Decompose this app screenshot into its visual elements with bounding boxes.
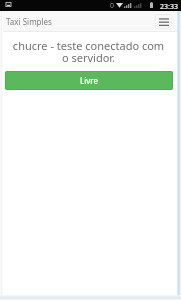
staticText: 0 [110,1,115,11]
button[interactable]: Menu [155,14,172,29]
button[interactable]: Livre [5,71,173,90]
staticText: chucre - teste conectado com o servidor. [11,38,166,65]
staticText: Taxi Simples [6,16,52,27]
staticText: Livre [80,75,98,86]
staticText: 23:33 [160,2,178,12]
